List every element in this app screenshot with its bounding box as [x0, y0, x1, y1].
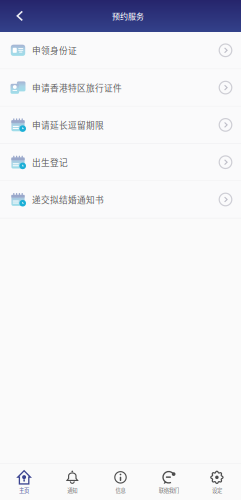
staticText: 出生登记 [32, 156, 68, 168]
staticText: 申请延长逗留期限 [32, 119, 104, 131]
button[interactable]: 联络我们 [145, 465, 193, 499]
button[interactable]: 申请延长逗留期限 [0, 107, 241, 143]
button[interactable]: 申领身份证 [0, 32, 241, 69]
staticText: 申领身份证 [32, 44, 77, 56]
button[interactable]: 通知 [48, 465, 96, 499]
button[interactable]: 信息 [96, 465, 145, 499]
staticText: 联络我们 [159, 486, 179, 494]
button[interactable]: 返回 [0, 0, 40, 32]
staticText: 主页 [19, 486, 29, 494]
staticText: 信息 [115, 486, 125, 494]
staticText: 通知 [67, 486, 77, 494]
staticText: 申请香港特区旅行证件 [32, 81, 122, 94]
staticText: 预约服务 [112, 10, 144, 22]
button[interactable]: 出生登记 [0, 144, 241, 180]
staticText: 递交拟结婚通知书 [32, 193, 104, 206]
button[interactable]: 设定 [193, 465, 241, 499]
button[interactable]: 申请香港特区旅行证件 [0, 69, 241, 106]
staticText: 设定 [212, 486, 222, 494]
button[interactable]: 主页 [0, 465, 48, 499]
button[interactable]: 递交拟结婚通知书 [0, 181, 241, 218]
